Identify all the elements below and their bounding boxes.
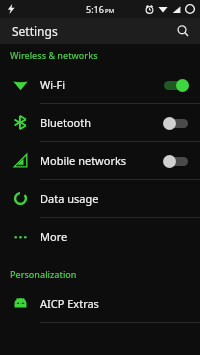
staticText: Bluetooth	[40, 115, 92, 130]
staticText: Wireless & networks	[10, 49, 98, 61]
staticText: Personalization	[10, 268, 77, 280]
button[interactable]: AICP Extras	[0, 285, 200, 322]
staticText: Data usage	[40, 191, 99, 206]
button[interactable]: Wi-Fi switch	[162, 75, 190, 95]
staticText: 5:16	[86, 3, 104, 15]
button[interactable]: Mobile networks switch	[162, 151, 190, 171]
staticText: AICP Extras	[40, 296, 99, 311]
staticText: More	[40, 229, 68, 244]
button[interactable]: Bluetooth switch	[162, 113, 190, 133]
button[interactable]: More	[0, 218, 200, 255]
button[interactable]: Data usage	[0, 180, 200, 217]
button[interactable]: Wi-Fi	[0, 66, 200, 103]
button[interactable]: Bluetooth	[0, 104, 200, 141]
staticText: Settings	[12, 23, 58, 39]
button[interactable]: Search	[172, 20, 194, 42]
staticText: Wi-Fi	[40, 77, 66, 92]
button[interactable]: Mobile networks	[0, 142, 200, 179]
staticText: PM	[105, 7, 115, 15]
staticText: Mobile networks	[40, 153, 127, 168]
